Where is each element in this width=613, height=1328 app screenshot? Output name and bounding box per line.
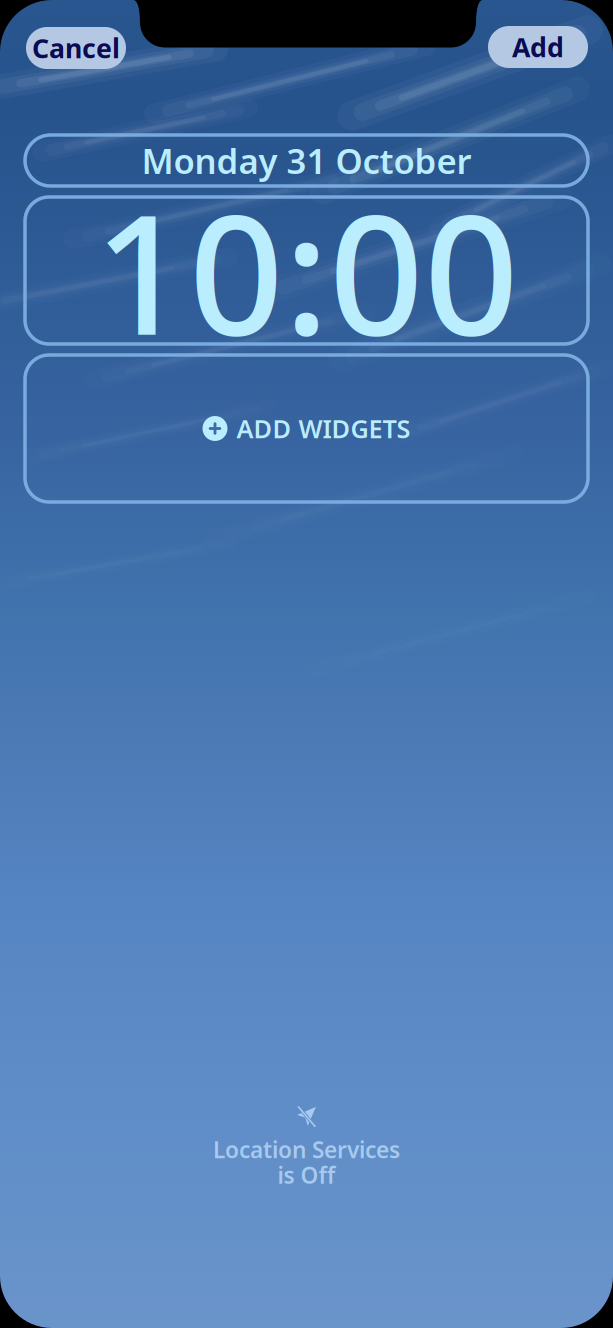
button[interactable]: Cancel xyxy=(26,27,126,69)
staticText: ADD WIDGETS xyxy=(236,412,410,445)
staticText: Location Services xyxy=(213,1134,400,1164)
staticText: is Off xyxy=(277,1160,335,1190)
button[interactable]: Add xyxy=(488,26,588,68)
button[interactable]: ADD WIDGETS xyxy=(25,355,588,502)
button[interactable]: 10:00 xyxy=(25,197,588,344)
staticText: Cancel xyxy=(32,30,120,66)
button[interactable]: Monday 31 October xyxy=(25,135,588,186)
staticText: Monday 31 October xyxy=(141,137,471,183)
staticText: 10:00 xyxy=(94,161,519,380)
staticText: Add xyxy=(512,29,564,65)
